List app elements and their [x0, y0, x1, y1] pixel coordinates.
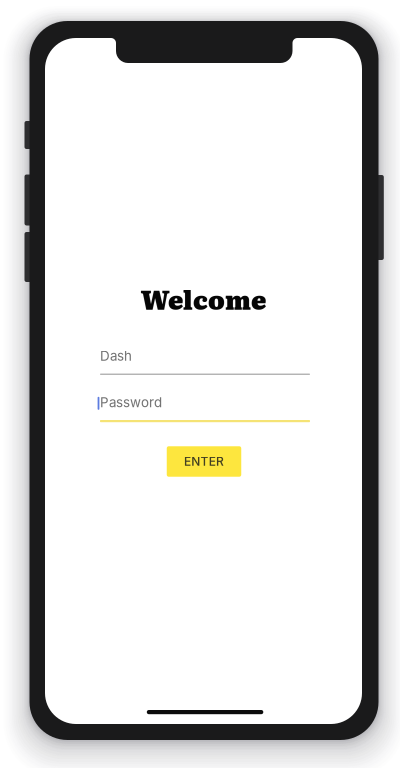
- staticText: Welcome: [141, 280, 266, 318]
- staticText: Dash: [100, 348, 132, 364]
- button[interactable]: Password: [100, 395, 310, 422]
- staticText: Password: [100, 394, 162, 410]
- button[interactable]: ENTER: [167, 446, 241, 477]
- staticText: ENTER: [184, 454, 224, 469]
- button[interactable]: Dash: [100, 349, 310, 375]
